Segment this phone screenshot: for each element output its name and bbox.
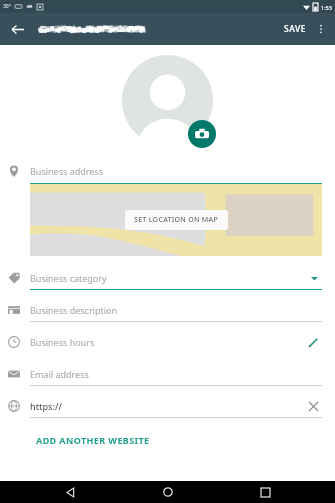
button[interactable]: Email address [0,358,335,390]
button[interactable]: Back [60,482,80,502]
staticText: 30° [3,3,11,10]
button[interactable]: Business category [0,262,335,294]
button[interactable]: Open category list [307,271,321,285]
button[interactable]: More options [311,19,331,39]
staticText: Email address [30,368,89,380]
button[interactable]: Recent apps [255,482,275,502]
staticText: Business category [30,272,107,284]
button[interactable]: Business address [0,158,335,184]
button[interactable]: Clear website [305,398,321,414]
button[interactable]: Edit business hours [305,334,321,350]
button[interactable]: Back [6,18,28,40]
staticText: Business description [30,304,118,316]
button[interactable]: https:// [0,390,335,422]
staticText: https:// [30,400,62,412]
staticText: Business hours [30,336,95,348]
button[interactable]: Change photo [188,120,216,148]
button[interactable]: Business hours [0,326,335,358]
staticText: SAVE [284,23,306,35]
button[interactable]: Business description [0,294,335,326]
staticText: ADD ANOTHER WEBSITE [36,434,150,446]
staticText: SET LOCATION ON MAP [134,215,219,225]
button[interactable]: Profile photo [122,55,213,146]
button[interactable]: Home [158,482,178,502]
button[interactable]: SAVE [279,19,311,39]
button[interactable]: ADD ANOTHER WEBSITE [30,428,156,452]
button[interactable]: SET LOCATION ON MAP [30,184,322,256]
staticText: Business address [30,165,103,177]
button[interactable]: SET LOCATION ON MAP [125,210,228,230]
staticText: 1:53 [321,4,332,11]
